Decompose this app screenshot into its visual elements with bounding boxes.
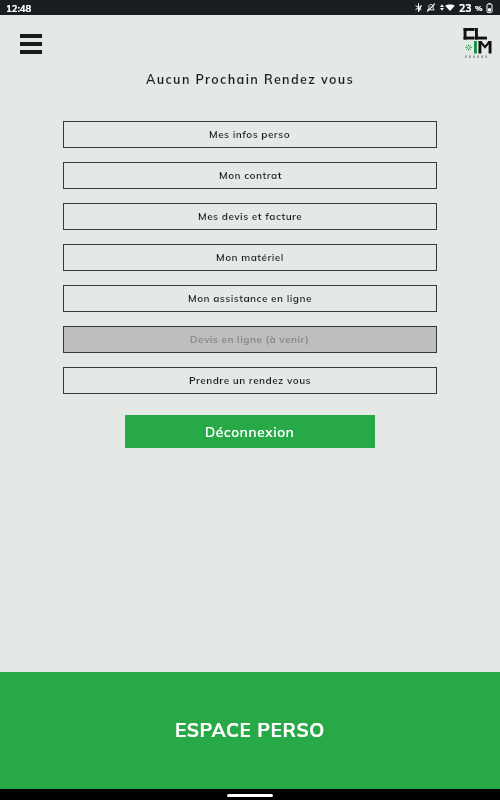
staticText: 23: [459, 1, 472, 14]
staticText: ESPACE PERSO: [175, 718, 325, 742]
staticText: %: [475, 3, 483, 13]
button[interactable]: Mon assistance en ligne: [63, 285, 437, 312]
staticText: Mes infos perso: [209, 128, 291, 141]
button[interactable]: Menu: [14, 28, 48, 60]
staticText: Prendre un rendez vous: [189, 374, 312, 387]
button[interactable]: Prendre un rendez vous: [63, 367, 437, 394]
button[interactable]: ESPACE PERSO: [0, 672, 500, 789]
button[interactable]: Mon matériel: [63, 244, 437, 271]
staticText: 12:48: [6, 2, 32, 14]
staticText: Déconnexion: [205, 423, 295, 440]
button[interactable]: Mon contrat: [63, 162, 437, 189]
other: CLIM Propre logo: [463, 28, 493, 59]
staticText: Mon assistance en ligne: [188, 292, 312, 305]
button[interactable]: Déconnexion: [125, 415, 375, 448]
staticText: Devis en ligne (à venir): [190, 333, 310, 346]
staticText: Aucun Prochain Rendez vous: [0, 71, 500, 87]
button[interactable]: Mes devis et facture: [63, 203, 437, 230]
staticText: Mes devis et facture: [198, 210, 303, 223]
staticText: Mon matériel: [216, 251, 284, 264]
staticText: Mon contrat: [219, 169, 282, 182]
button[interactable]: Mes infos perso: [63, 121, 437, 148]
button[interactable]: Devis en ligne (à venir): [63, 326, 437, 353]
